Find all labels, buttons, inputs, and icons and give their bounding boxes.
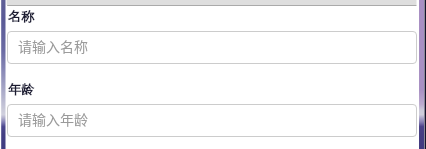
staticText: 请输入年龄 (18, 109, 88, 129)
button[interactable]: 请输入年龄 (7, 104, 417, 137)
staticText: 请输入名称 (18, 36, 88, 56)
button[interactable]: 请输入名称 (7, 31, 417, 64)
staticText: 名称 (8, 8, 34, 24)
staticText: 年龄 (8, 81, 34, 97)
